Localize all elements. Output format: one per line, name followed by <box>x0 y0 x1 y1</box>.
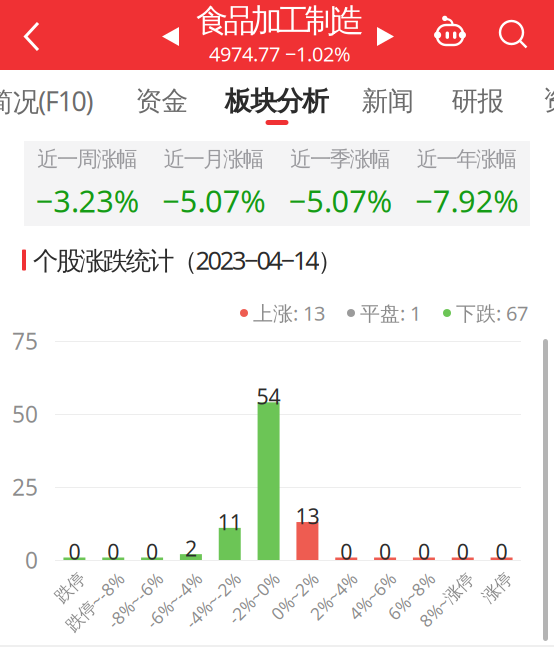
staticText: -8%~-6% <box>84 566 154 589</box>
staticText: 资 <box>543 84 554 117</box>
staticText: 近一周涨幅 <box>37 146 137 172</box>
staticText: 2 <box>185 534 197 562</box>
staticText: 涨停 <box>470 567 504 589</box>
staticText: 近一季涨幅 <box>290 146 390 172</box>
staticText: 跌停~-8% <box>41 566 115 589</box>
staticText: 板块分析 <box>225 85 329 117</box>
staticText: 11 <box>218 508 242 536</box>
button[interactable]: 资金 <box>97 82 227 143</box>
staticText: 0 <box>107 537 119 566</box>
staticText: 75 <box>12 326 38 356</box>
staticText: −5.07% <box>289 180 392 221</box>
staticText: 资金 <box>136 85 188 117</box>
staticText: -2%~0% <box>207 566 271 589</box>
button[interactable]: 研报 <box>413 82 543 143</box>
staticText: 新闻 <box>362 85 414 117</box>
staticText: −5.07% <box>162 180 265 221</box>
staticText: 0%~2% <box>251 566 309 589</box>
staticText: 0 <box>496 537 508 566</box>
staticText: 跌停 <box>42 567 76 589</box>
button[interactable]: 新闻 <box>323 82 453 143</box>
button[interactable]: 板块分析 <box>212 82 342 143</box>
staticText: 食品加工制造 <box>196 1 364 40</box>
staticText: 平盘: 1 <box>360 300 421 326</box>
staticText: 0 <box>25 545 38 575</box>
staticText: 25 <box>12 472 38 502</box>
staticText: 研报 <box>452 85 504 117</box>
staticText: -4%~-2% <box>162 566 232 589</box>
staticText: 个股涨跌统计（2023−04−14） <box>33 243 342 277</box>
button[interactable]: Search <box>490 11 538 59</box>
staticText: 2%~4% <box>290 566 348 589</box>
staticText: 0 <box>379 537 391 566</box>
button[interactable]: AI assistant <box>426 6 474 54</box>
staticText: 4%~6% <box>329 566 387 589</box>
staticText: 近一年涨幅 <box>417 146 517 172</box>
staticText: −7.92% <box>415 180 518 221</box>
staticText: -6%~-4% <box>123 566 193 589</box>
staticText: 近一月涨幅 <box>164 146 264 172</box>
button[interactable]: 简况(F10) <box>0 82 105 143</box>
button[interactable]: Back <box>6 9 58 65</box>
staticText: 简况(F10) <box>0 83 93 119</box>
staticText: 6%~8% <box>368 566 426 589</box>
staticText: −3.23% <box>36 180 139 221</box>
staticText: 8%~涨停 <box>397 566 465 589</box>
staticText: 0 <box>418 537 430 566</box>
staticText: 13 <box>295 502 319 530</box>
staticText: 54 <box>257 382 281 410</box>
staticText: 0 <box>340 537 352 566</box>
staticText: 0 <box>146 537 158 566</box>
button[interactable]: Previous sector <box>151 17 191 57</box>
staticText: 下跌: 67 <box>456 300 528 326</box>
staticText: 0 <box>68 537 80 566</box>
staticText: 4974.77 −1.02% <box>209 40 351 67</box>
staticText: 0 <box>457 537 469 566</box>
staticText: 50 <box>12 399 38 429</box>
staticText: 上涨: 13 <box>253 300 325 326</box>
button[interactable]: Next sector <box>366 17 406 57</box>
